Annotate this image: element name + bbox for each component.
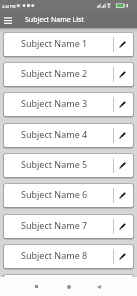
staticText: Subject Name 7 <box>21 219 88 231</box>
button[interactable]: Home <box>57 277 80 296</box>
staticText: Subject Name 9 <box>21 279 88 291</box>
button[interactable]: Subject Name 5 <box>4 154 133 177</box>
staticText: Subject Name 4 <box>21 128 88 140</box>
staticText: Subject Name List <box>25 15 84 25</box>
button[interactable]: Edit subject <box>114 245 131 268</box>
staticText: 2:34 PM <box>2 4 16 9</box>
button[interactable]: Subject Name 9 <box>4 275 133 296</box>
button[interactable]: Subject Name 8 <box>4 245 133 268</box>
staticText: Subject Name 2 <box>21 67 88 79</box>
button[interactable]: Subject Name 3 <box>4 93 133 116</box>
button[interactable]: Subject Name 6 <box>4 184 133 207</box>
button[interactable]: Edit subject <box>114 93 131 116</box>
button[interactable]: Edit subject <box>114 215 131 238</box>
button[interactable]: Edit subject <box>114 33 131 56</box>
button[interactable]: Back <box>87 277 110 296</box>
button[interactable]: Edit subject <box>114 184 131 207</box>
staticText: Subject Name 1 <box>21 37 88 49</box>
button[interactable]: Subject Name 1 <box>4 33 133 56</box>
staticText: Subject Name 8 <box>21 249 88 261</box>
button[interactable]: Edit subject <box>114 63 131 86</box>
button[interactable]: Open navigation drawer <box>0 12 16 28</box>
staticText: Subject Name 3 <box>21 97 88 109</box>
button[interactable]: Subject Name 4 <box>4 124 133 147</box>
button[interactable]: Recent apps <box>25 277 48 296</box>
button[interactable]: Subject Name 7 <box>4 215 133 238</box>
staticText: Subject Name 5 <box>21 158 88 170</box>
staticText: Subject Name 6 <box>21 188 88 200</box>
button[interactable]: Subject Name 2 <box>4 63 133 86</box>
button[interactable]: Edit subject <box>114 154 131 177</box>
button[interactable]: Edit subject <box>114 124 131 147</box>
